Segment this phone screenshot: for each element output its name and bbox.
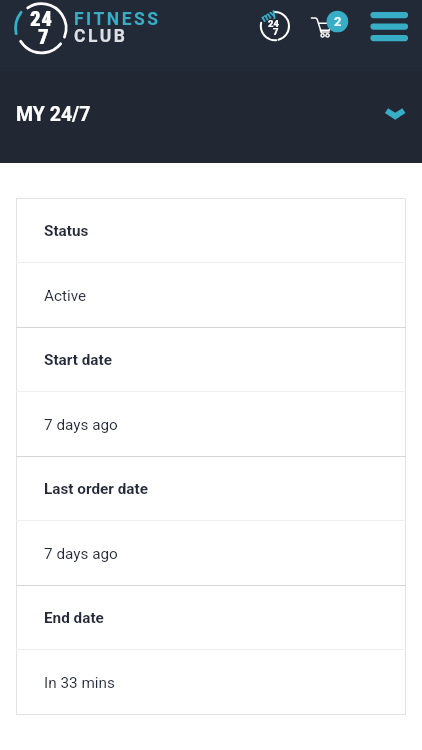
button[interactable]: End date: [16, 585, 406, 650]
button[interactable]: 7 days ago: [16, 521, 406, 586]
staticText: FITNESS: [74, 9, 161, 30]
staticText: 7 days ago: [44, 545, 118, 563]
staticText: my: [259, 6, 279, 25]
button[interactable]: MY 24/7: [0, 71, 422, 163]
staticText: 7: [273, 26, 279, 37]
button[interactable]: 7 days ago: [16, 392, 406, 457]
button[interactable]: Active: [16, 263, 406, 328]
button[interactable]: Last order date: [16, 456, 406, 521]
staticText: 2: [334, 14, 342, 29]
staticText: Active: [44, 287, 87, 305]
staticText: End date: [44, 609, 104, 627]
staticText: Status: [44, 222, 89, 240]
button[interactable]: My 24/7: [251, 2, 299, 50]
staticText: 7: [38, 25, 49, 50]
staticText: In 33 mins: [44, 674, 115, 692]
staticText: 24: [268, 18, 279, 29]
button[interactable]: Start date: [16, 327, 406, 392]
staticText: 7 days ago: [44, 416, 118, 434]
staticText: CLUB: [74, 26, 128, 47]
button[interactable]: Status: [16, 198, 406, 263]
button[interactable]: Shopping cart: [303, 0, 351, 48]
staticText: MY 24/7: [16, 103, 91, 126]
staticText: Start date: [44, 351, 112, 369]
staticText: Last order date: [44, 480, 148, 498]
staticText: 24: [30, 7, 53, 32]
button[interactable]: In 33 mins: [16, 650, 406, 715]
button[interactable]: Menu: [364, 3, 412, 51]
